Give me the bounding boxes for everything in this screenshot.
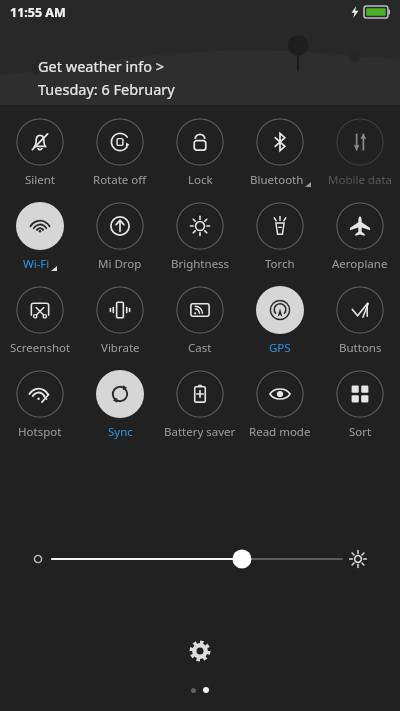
button[interactable]: Cast (160, 284, 240, 358)
button[interactable]: Battery saver (160, 368, 240, 442)
staticText: Rotate off (93, 172, 147, 188)
button[interactable]: Wi-Fi (0, 200, 80, 274)
staticText: Get weather info > (38, 56, 165, 76)
staticText: Bluetooth (250, 172, 304, 188)
staticText: Lock (188, 172, 213, 188)
staticText: Tuesday: 6 February (38, 79, 175, 99)
button[interactable]: Sync (80, 368, 160, 442)
staticText: Mobile data (328, 172, 392, 188)
button[interactable]: Sort (320, 368, 400, 442)
staticText: Silent (25, 172, 55, 188)
button[interactable]: Buttons (320, 284, 400, 358)
button[interactable]: Brightness slider (0, 539, 400, 579)
staticText: Battery saver (164, 424, 236, 440)
staticText: Wi-Fi (23, 256, 50, 272)
button[interactable]: Rotate off (80, 116, 160, 190)
button[interactable]: Mobile data (320, 116, 400, 190)
button[interactable]: Lock (160, 116, 240, 190)
staticText: Aeroplane (332, 256, 388, 272)
staticText: Screenshot (10, 340, 71, 356)
staticText: Sort (349, 424, 372, 440)
button[interactable]: Brightness (160, 200, 240, 274)
button[interactable]: Settings (178, 629, 222, 673)
staticText: 11:55 AM (10, 4, 66, 21)
button[interactable]: Vibrate (80, 284, 160, 358)
button[interactable]: Torch (240, 200, 320, 274)
staticText: Vibrate (101, 340, 140, 356)
button[interactable]: GPS (240, 284, 320, 358)
staticText: Read mode (249, 424, 311, 440)
button[interactable]: Bluetooth (240, 116, 320, 190)
staticText: Hotspot (18, 424, 62, 440)
button[interactable]: Aeroplane (320, 200, 400, 274)
staticText: Brightness (171, 256, 230, 272)
button[interactable]: Screenshot (0, 284, 80, 358)
staticText: Cast (188, 340, 212, 356)
button[interactable]: Silent (0, 116, 80, 190)
staticText: Buttons (339, 340, 382, 356)
staticText: Torch (265, 256, 295, 272)
staticText: Mi Drop (98, 256, 142, 272)
staticText: GPS (269, 340, 291, 356)
staticText: Sync (108, 424, 133, 440)
button[interactable]: Hotspot (0, 368, 80, 442)
button[interactable]: Mi Drop (80, 200, 160, 274)
button[interactable]: Read mode (240, 368, 320, 442)
